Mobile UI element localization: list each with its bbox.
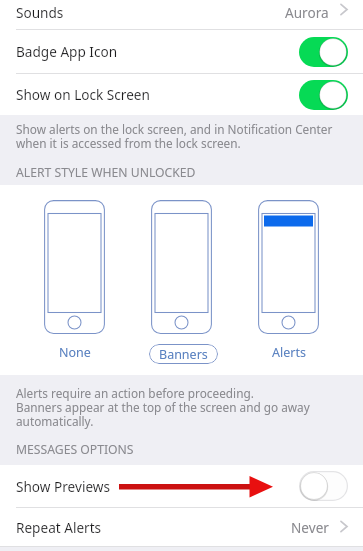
staticText: Alerts — [272, 344, 306, 361]
staticText: Alerts require an action before proceedi… — [16, 385, 310, 429]
button[interactable]: None — [44, 342, 105, 362]
button[interactable]: Banners — [149, 344, 218, 364]
button[interactable]: Show Previews — [0, 465, 363, 507]
button[interactable]: Show on Lock Screen — [0, 74, 363, 115]
staticText: Show on Lock Screen — [16, 85, 150, 104]
button[interactable]: Alerts — [258, 342, 319, 362]
button[interactable]: On — [299, 37, 348, 67]
staticText: None — [59, 344, 91, 361]
staticText: MESSAGES OPTIONS — [16, 441, 134, 458]
staticText: Never — [291, 518, 329, 537]
staticText: Show alerts on the lock screen, and in N… — [16, 121, 333, 151]
button[interactable]: Sounds — [0, 0, 363, 29]
button[interactable]: Repeat Alerts — [0, 508, 363, 546]
button[interactable]: On — [299, 80, 348, 110]
staticText: Repeat Alerts — [16, 518, 102, 537]
button[interactable]: Off — [299, 471, 348, 501]
staticText: ALERT STYLE WHEN UNLOCKED — [16, 164, 196, 181]
staticText: Sounds — [16, 3, 64, 22]
staticText: Show Previews — [16, 477, 110, 496]
button[interactable]: Badge App Icon — [0, 30, 363, 73]
staticText: Aurora — [285, 3, 329, 22]
staticText: Banners — [159, 346, 208, 363]
staticText: Badge App Icon — [16, 42, 118, 61]
